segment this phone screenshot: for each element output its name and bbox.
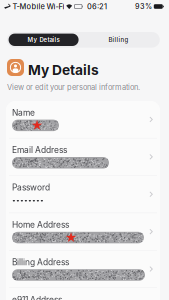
staticText: My Details <box>28 62 99 78</box>
staticText: ★ <box>65 231 78 244</box>
staticText: View or edit your personal information. <box>7 83 140 92</box>
button[interactable]: Email Address <box>6 138 160 175</box>
staticText: 93% <box>135 2 152 11</box>
staticText: Password <box>12 183 50 192</box>
button[interactable]: Home Address <box>6 213 160 250</box>
staticText: Billing Address <box>12 257 69 267</box>
staticText: T-Mobile Wi-Fi <box>12 2 64 11</box>
staticText: Billing <box>108 36 128 43</box>
staticText: 06:21 <box>87 2 107 11</box>
button[interactable]: Billing Address <box>6 251 160 287</box>
button[interactable]: My Details <box>9 34 79 46</box>
staticText: Home Address <box>12 220 69 230</box>
button[interactable]: e911 Address <box>6 288 160 300</box>
staticText: Name <box>12 108 35 117</box>
staticText: Email Address <box>12 145 67 155</box>
staticText: ★ <box>31 118 44 132</box>
button[interactable]: Name <box>6 101 160 138</box>
staticText: •••••••• <box>12 196 44 204</box>
staticText: e911 Address <box>12 295 62 300</box>
button[interactable]: Password <box>6 176 160 213</box>
staticText: My Details <box>28 36 60 43</box>
button[interactable]: Billing <box>79 34 158 46</box>
